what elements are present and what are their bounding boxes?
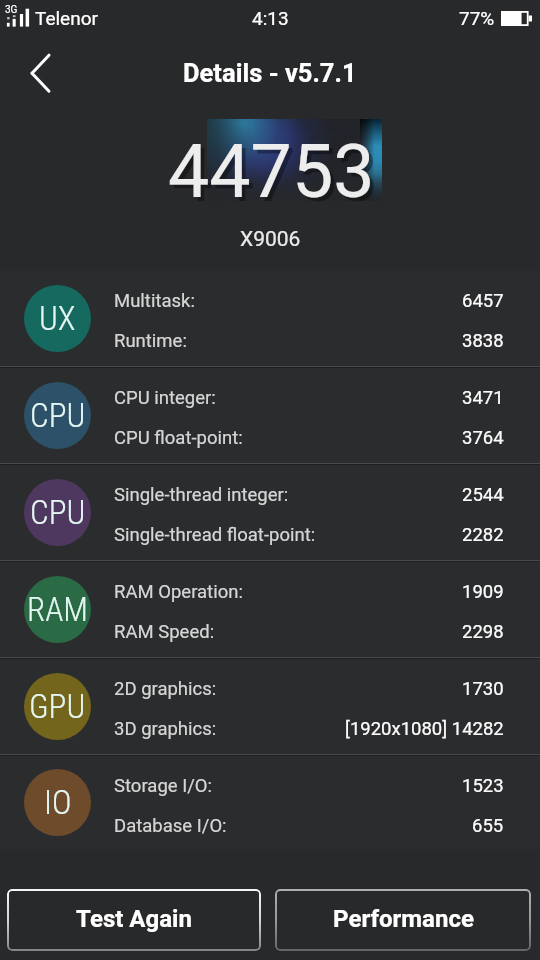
button[interactable]: CPU [0,465,540,560]
staticText: 1523 [462,775,504,797]
staticText: 2D graphics: [114,678,217,700]
staticText: Storage I/O: [114,775,213,797]
staticText: RAM [27,590,88,629]
staticText: Performance [333,905,474,933]
staticText: 1909 [462,581,504,603]
button[interactable]: UX [0,271,540,366]
staticText: 3D graphics: [114,718,217,740]
staticText: 3G [5,4,18,16]
staticText: RAM Speed: [114,621,215,643]
button[interactable]: Back [10,44,72,102]
staticText: RAM Operation: [114,581,243,603]
staticText: 3764 [462,427,504,449]
button[interactable]: Test Again [7,889,261,951]
staticText: 2544 [462,484,504,506]
staticText: CPU integer: [114,387,216,409]
staticText: Telenor [35,7,98,29]
staticText: 2282 [462,524,504,546]
staticText: 44753 [172,133,379,219]
staticText: 3838 [462,330,504,352]
staticText: GPU [29,687,86,726]
staticText: 4:13 [252,7,289,29]
staticText: 2298 [462,621,504,643]
staticText: 655 [472,815,504,837]
staticText: Runtime: [114,330,187,352]
button[interactable]: CPU [0,368,540,463]
button[interactable]: RAM [0,562,540,657]
staticText: Database I/O: [114,815,227,837]
staticText: Single-thread integer: [114,484,289,506]
staticText: 44753 [168,129,375,215]
staticText: 1730 [462,678,504,700]
staticText: Multitask: [114,290,195,312]
staticText: Single-thread float-point: [114,524,316,546]
staticText: X9006 [240,227,301,252]
staticText: UX [39,299,76,338]
button[interactable]: GPU [0,659,540,754]
staticText: Details - v5.7.1 [183,58,357,88]
staticText: IO [44,783,72,822]
button[interactable]: IO [0,756,540,849]
staticText: [1920x1080] 14282 [345,718,504,740]
staticText: CPU float-point: [114,427,243,449]
button[interactable]: Performance [275,889,531,951]
staticText: Test Again [76,905,192,933]
staticText: CPU [30,396,86,435]
staticText: 3471 [462,387,504,409]
staticText: 6457 [462,290,504,312]
staticText: CPU [30,493,86,532]
staticText: 77% [459,7,495,29]
